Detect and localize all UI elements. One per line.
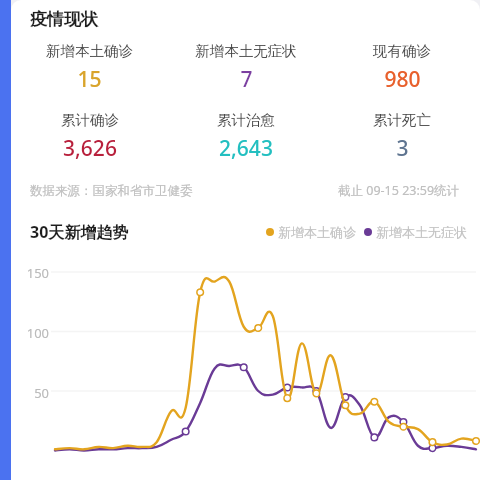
button[interactable]: 累计治愈 (168, 111, 324, 163)
button[interactable]: 累计死亡 (324, 111, 480, 163)
button[interactable]: 新增本土无症状 (168, 42, 324, 94)
button[interactable]: 累计确诊 (11, 111, 168, 163)
staticText: 新增本土无症状 (195, 42, 297, 60)
staticText: 现有确诊 (373, 42, 431, 60)
staticText: 980 (384, 65, 421, 94)
staticText: 截止 09-15 23:59统计 (338, 182, 460, 199)
staticText: 150 (11, 264, 49, 282)
button[interactable]: 新增本土无症状 (364, 224, 467, 240)
staticText: 新增本土无症状 (376, 224, 467, 240)
button[interactable]: 现有确诊 (324, 42, 480, 94)
staticText: 累计治愈 (217, 111, 275, 129)
staticText: 累计死亡 (373, 111, 431, 129)
staticText: 数据来源：国家和省市卫健委 (30, 183, 193, 199)
button[interactable]: 新增本土确诊 (11, 42, 168, 94)
staticText: 30天新增趋势 (30, 221, 129, 243)
staticText: 50 (11, 384, 49, 402)
staticText: 3 (396, 134, 409, 163)
staticText: 新增本土确诊 (278, 224, 356, 240)
staticText: 累计确诊 (61, 111, 119, 129)
staticText: 15 (77, 65, 102, 94)
button[interactable]: 新增本土确诊 (266, 224, 356, 240)
staticText: 2,643 (219, 134, 273, 163)
staticText: 疫情现状 (30, 9, 98, 30)
staticText: 3,626 (63, 134, 117, 163)
staticText: 新增本土确诊 (46, 42, 133, 60)
staticText: 100 (11, 324, 49, 342)
staticText: 7 (240, 65, 253, 94)
